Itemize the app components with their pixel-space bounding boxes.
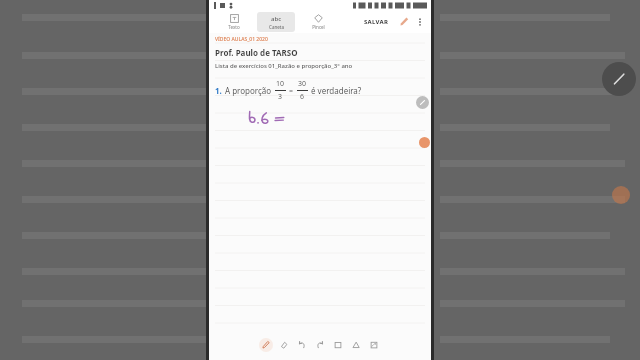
staticText: Texto xyxy=(228,24,240,30)
button[interactable]: Seleção xyxy=(331,338,345,352)
button[interactable]: Editar xyxy=(416,96,429,109)
button[interactable]: Imagem xyxy=(367,338,381,352)
button[interactable]: Formas xyxy=(349,338,363,352)
button[interactable]: Mais opções xyxy=(413,15,427,29)
button[interactable]: Desfazer xyxy=(295,338,309,352)
button[interactable]: SALVAR xyxy=(360,16,393,28)
staticText: 1. xyxy=(215,85,222,96)
staticText: 6 xyxy=(300,92,305,102)
staticText: SALVAR xyxy=(364,18,389,26)
staticText: VÍDEO AULAS_01 2020 xyxy=(215,36,268,43)
staticText: Lista de exercícios 01_Razão e proporção… xyxy=(215,62,353,70)
staticText: abc xyxy=(271,15,282,23)
button[interactable]: Texto xyxy=(215,12,253,32)
staticText: 3 xyxy=(278,92,283,102)
staticText: Prof. Paulo de TARSO xyxy=(215,47,298,58)
staticText: = xyxy=(289,86,294,96)
button[interactable]: Borracha xyxy=(277,338,291,352)
button[interactable]: Refazer xyxy=(313,338,327,352)
button[interactable]: abc xyxy=(257,12,295,32)
staticText: Pincel xyxy=(312,24,325,30)
staticText: é verdadeira? xyxy=(311,85,362,96)
button[interactable]: Pincel xyxy=(299,12,337,32)
staticText: A proporção xyxy=(225,85,272,96)
button[interactable]: Caneta xyxy=(259,338,273,352)
staticText: 30 xyxy=(298,79,307,89)
staticText: 10 xyxy=(276,79,285,89)
button[interactable]: Marca-texto xyxy=(396,14,412,30)
staticText: Caneta xyxy=(269,24,284,30)
button[interactable]: Desenhar xyxy=(602,62,636,96)
